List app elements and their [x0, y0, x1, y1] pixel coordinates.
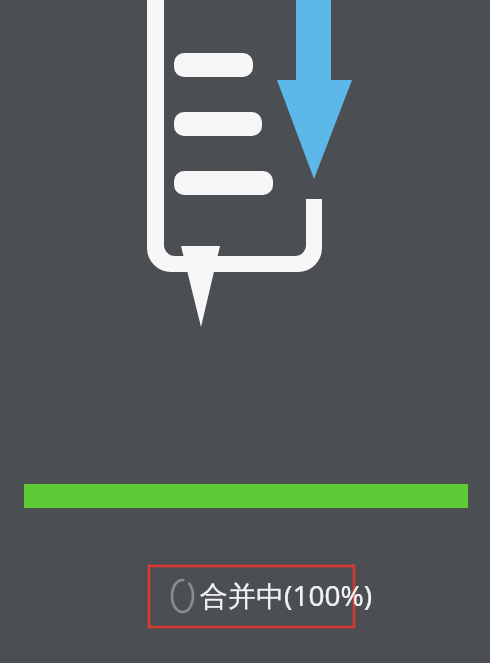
staticText: 合并中(100%): [200, 576, 373, 614]
button[interactable]: Merging 100 percent: [149, 566, 354, 627]
